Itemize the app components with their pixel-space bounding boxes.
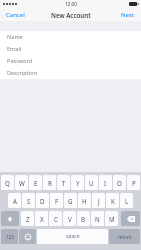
staticText: Email (7, 45, 22, 53)
button[interactable]: R (43, 175, 56, 190)
staticText: F (55, 197, 59, 205)
button[interactable]: Password (0, 55, 141, 67)
button[interactable]: P (127, 175, 140, 190)
staticText: I (104, 179, 107, 187)
button[interactable]: L (120, 193, 133, 208)
button[interactable]: G (64, 193, 77, 208)
button[interactable]: I (99, 175, 112, 190)
button[interactable]: Email (0, 43, 141, 55)
staticText: B (81, 215, 86, 223)
staticText: W (19, 179, 25, 187)
button[interactable]: H (78, 193, 91, 208)
staticText: Next (121, 11, 135, 19)
staticText: Name (7, 33, 23, 41)
button[interactable]: U (85, 175, 98, 190)
button[interactable]: V (63, 211, 76, 226)
staticText: space (66, 233, 80, 240)
button[interactable]: N (91, 211, 104, 226)
staticText: E (34, 179, 38, 187)
button[interactable]: C (49, 211, 62, 226)
staticText: 123 (6, 234, 14, 240)
staticText: S (27, 197, 31, 205)
button[interactable]: T (57, 175, 70, 190)
button[interactable]: F (50, 193, 63, 208)
button[interactable]: S (22, 193, 35, 208)
button[interactable]: Shift (1, 211, 19, 226)
staticText: C (54, 215, 58, 223)
staticText: Z (26, 215, 30, 223)
button[interactable]: J (92, 193, 105, 208)
button[interactable]: D (36, 193, 49, 208)
button[interactable]: M (105, 211, 118, 226)
button[interactable]: K (106, 193, 119, 208)
staticText: T (62, 179, 66, 187)
staticText: J (98, 197, 100, 205)
button[interactable]: A (8, 193, 21, 208)
staticText: X (40, 215, 44, 223)
button[interactable]: Y (71, 175, 84, 190)
staticText: L (125, 197, 129, 205)
button[interactable]: X (35, 211, 48, 226)
button[interactable]: Description (0, 67, 141, 79)
staticText: New Account (51, 11, 91, 19)
staticText: Password (7, 57, 33, 65)
staticText: Description (7, 69, 38, 77)
button[interactable]: 123 (1, 229, 18, 244)
staticText: P (132, 179, 136, 187)
staticText: V (68, 215, 72, 223)
button[interactable]: E (29, 175, 42, 190)
staticText: M (109, 215, 115, 223)
staticText: G (68, 197, 73, 205)
staticText: A (13, 197, 17, 205)
staticText: Q (5, 179, 10, 187)
staticText: U (89, 179, 94, 187)
button[interactable]: O (113, 175, 126, 190)
button[interactable]: Q (1, 175, 14, 190)
button[interactable]: Name (0, 31, 141, 43)
staticText: Y (76, 179, 80, 187)
staticText: H (82, 197, 87, 205)
staticText: K (111, 197, 115, 205)
staticText: 12:00 (65, 1, 77, 7)
button[interactable]: Emoji (19, 229, 36, 244)
staticText: N (95, 215, 100, 223)
staticText: Cancel (6, 11, 25, 19)
button[interactable]: Next (115, 8, 141, 21)
button[interactable]: Backspace (121, 211, 140, 226)
button[interactable]: B (77, 211, 90, 226)
button[interactable]: return (109, 229, 140, 244)
button[interactable]: space (37, 229, 108, 244)
button[interactable]: Cancel (0, 8, 31, 21)
button[interactable]: W (15, 175, 28, 190)
staticText: R (48, 179, 52, 187)
staticText: return (118, 234, 132, 240)
button[interactable]: Z (21, 211, 34, 226)
staticText: D (40, 197, 45, 205)
staticText: O (117, 179, 122, 187)
